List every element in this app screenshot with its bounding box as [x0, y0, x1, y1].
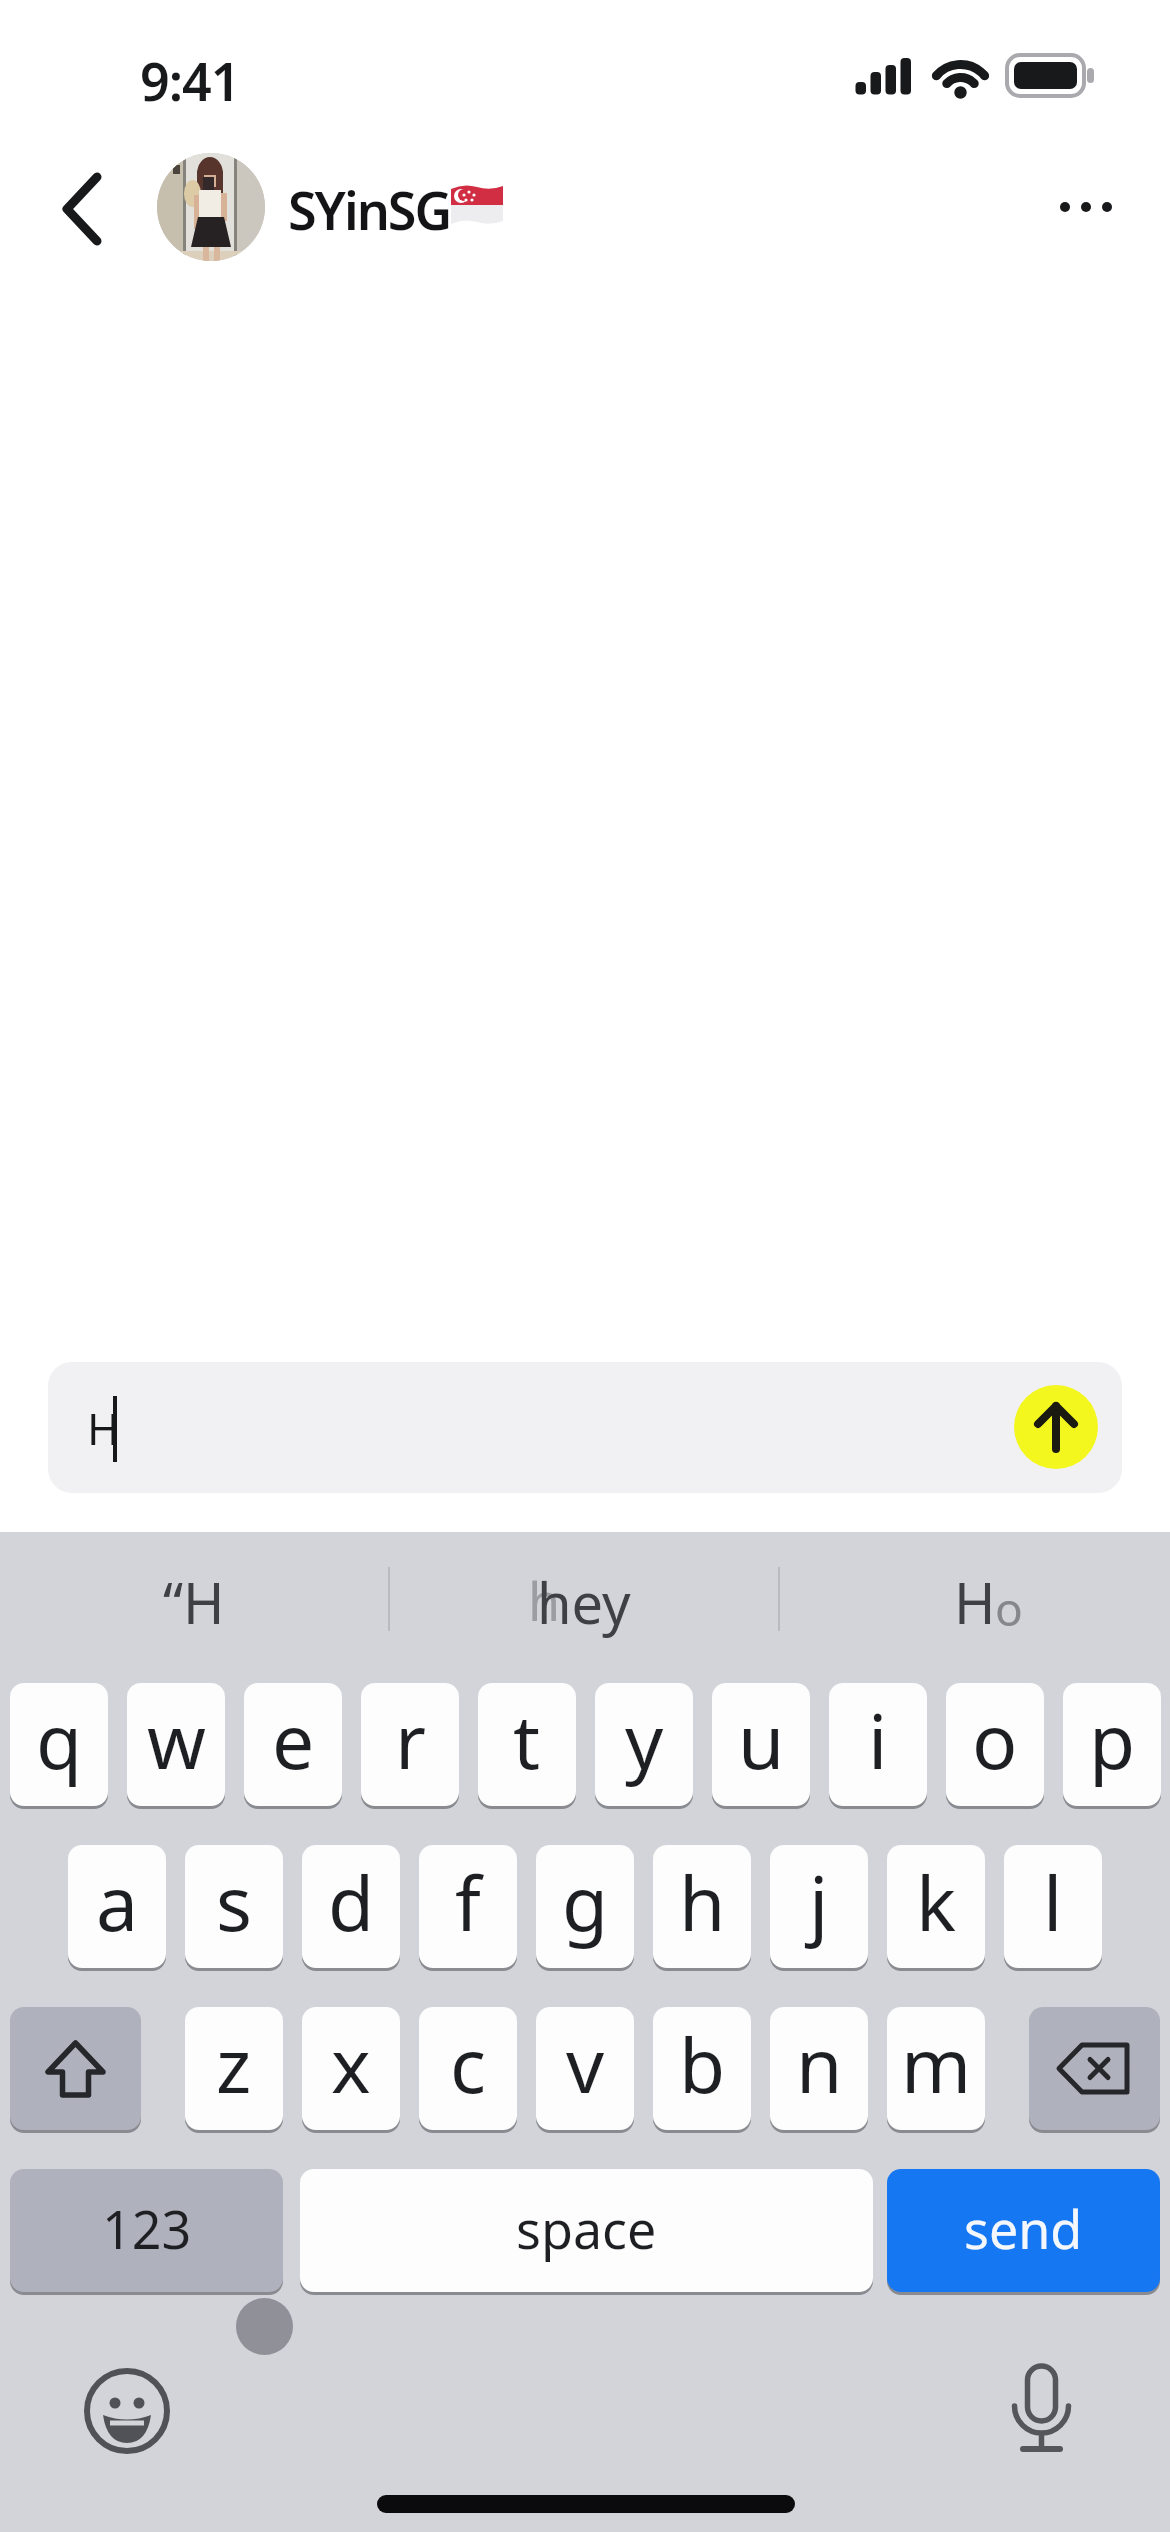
button[interactable]: i [829, 1683, 927, 1806]
staticText: hey [537, 1564, 631, 1640]
staticText: 9:41 [140, 45, 240, 109]
button[interactable]: b [653, 2007, 751, 2130]
staticText: t [513, 1689, 541, 1791]
staticText: i [868, 1689, 888, 1791]
button[interactable]: l [1004, 1845, 1102, 1968]
button[interactable]: u [712, 1683, 810, 1806]
button[interactable]: d [302, 1845, 400, 1968]
button[interactable]: a [68, 1845, 166, 1968]
button[interactable] [80, 2364, 174, 2458]
staticText: 123 [102, 2193, 192, 2264]
button[interactable]: p [1063, 1683, 1161, 1806]
staticText: k [916, 1851, 957, 1953]
staticText: j [809, 1851, 829, 1953]
staticText: r [395, 1689, 426, 1791]
staticText: p [1089, 1689, 1136, 1791]
button[interactable]: H [48, 1362, 1122, 1493]
staticText: H [87, 1398, 120, 1458]
staticText: l [1043, 1851, 1063, 1953]
button[interactable]: q [10, 1683, 108, 1806]
button[interactable]: k [887, 1845, 985, 1968]
button[interactable] [1040, 180, 1130, 234]
button[interactable]: 123 [10, 2169, 283, 2292]
button[interactable]: y [595, 1683, 693, 1806]
staticText: f [455, 1851, 481, 1953]
button[interactable]: s [185, 1845, 283, 1968]
button[interactable]: f [419, 1845, 517, 1968]
button[interactable]: space [300, 2169, 873, 2292]
staticText: a [96, 1851, 139, 1953]
button[interactable]: z [185, 2007, 283, 2130]
button[interactable] [40, 160, 130, 258]
button[interactable] [1014, 1385, 1098, 1469]
staticText: h [679, 1851, 726, 1953]
button[interactable]: c [419, 2007, 517, 2130]
staticText: q [36, 1689, 83, 1791]
staticText: y [625, 1689, 664, 1791]
button[interactable] [157, 153, 265, 261]
staticText: n [796, 2013, 843, 2115]
button[interactable]: h [390, 1536, 778, 1668]
staticText: m [901, 2013, 972, 2115]
button[interactable]: o [946, 1683, 1044, 1806]
staticText: z [216, 2013, 252, 2115]
button[interactable] [10, 2007, 141, 2130]
staticText: g [562, 1851, 609, 1953]
button[interactable]: x [302, 2007, 400, 2130]
staticText: d [328, 1851, 375, 1953]
staticText: o [972, 1689, 1018, 1791]
staticText: v [566, 2013, 605, 2115]
staticText: send [964, 2193, 1083, 2264]
button[interactable]: send [887, 2169, 1160, 2292]
button[interactable]: “H [0, 1536, 388, 1668]
staticText: H [954, 1564, 996, 1640]
button[interactable]: h [653, 1845, 751, 1968]
button[interactable]: g [536, 1845, 634, 1968]
button[interactable]: w [127, 1683, 225, 1806]
button[interactable]: H [780, 1536, 1170, 1668]
button[interactable]: v [536, 2007, 634, 2130]
button[interactable]: j [770, 1845, 868, 1968]
button[interactable]: n [770, 2007, 868, 2130]
staticText: s [216, 1851, 252, 1953]
staticText: “H [163, 1564, 225, 1640]
staticText: w [147, 1689, 206, 1791]
button[interactable] [995, 2355, 1090, 2455]
staticText: e [272, 1689, 315, 1791]
staticText: h [528, 1565, 561, 1636]
button[interactable]: m [887, 2007, 985, 2130]
staticText: space [516, 2193, 657, 2264]
staticText: SYinSG [288, 174, 451, 240]
button[interactable]: t [478, 1683, 576, 1806]
staticText: c [450, 2013, 487, 2115]
button[interactable]: e [244, 1683, 342, 1806]
button[interactable]: r [361, 1683, 459, 1806]
staticText: x [331, 2013, 371, 2115]
staticText: b [679, 2013, 726, 2115]
staticText: o [995, 1577, 1023, 1640]
staticText: u [738, 1689, 785, 1791]
button[interactable] [1029, 2007, 1160, 2130]
